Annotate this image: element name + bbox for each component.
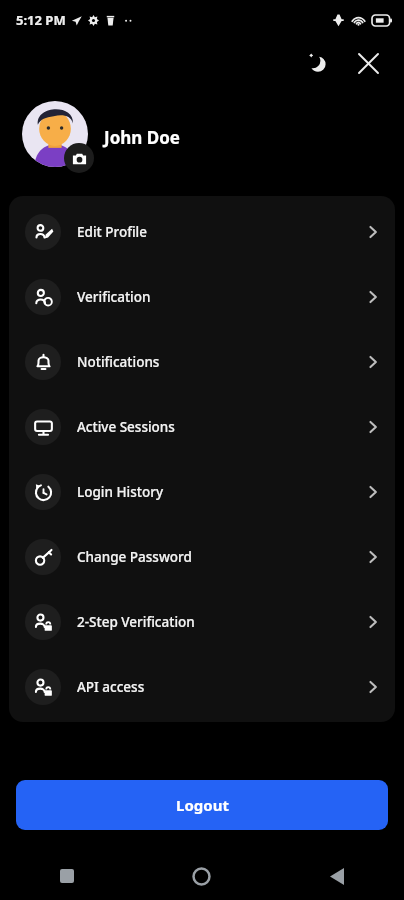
staticText: 2-Step Verification (77, 613, 195, 631)
button[interactable]: Home (134, 852, 269, 900)
staticText: John Doe (104, 126, 180, 149)
staticText: Active Sessions (77, 418, 175, 436)
button[interactable]: Login History (9, 459, 395, 524)
button[interactable]: Change Password (9, 524, 395, 589)
button[interactable]: Logout (16, 780, 388, 830)
button[interactable]: API access (9, 654, 395, 719)
staticText: 5:12 PM (16, 11, 66, 29)
staticText: Login History (77, 483, 164, 501)
button[interactable]: Verification (9, 264, 395, 329)
button[interactable]: Back (269, 852, 404, 900)
button[interactable]: Active Sessions (9, 394, 395, 459)
button[interactable]: Change photo (64, 143, 94, 173)
button[interactable]: 2-Step Verification (9, 589, 395, 654)
button[interactable]: Notifications (9, 329, 395, 394)
button[interactable]: Close (346, 41, 390, 85)
button[interactable]: Recent apps (0, 852, 134, 900)
staticText: Edit Profile (77, 223, 147, 241)
staticText: Change Password (77, 548, 192, 566)
staticText: Logout (176, 795, 229, 815)
staticText: Notifications (77, 353, 160, 371)
button[interactable]: Edit Profile (9, 199, 395, 264)
staticText: Verification (77, 288, 151, 306)
staticText: API access (77, 678, 145, 696)
button[interactable]: Toggle dark mode (296, 41, 340, 85)
